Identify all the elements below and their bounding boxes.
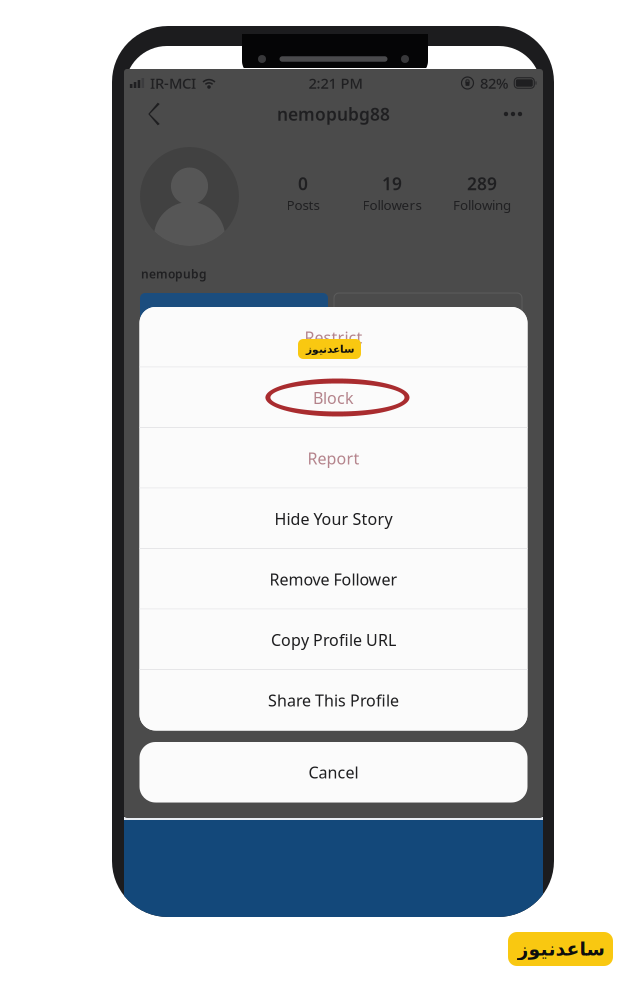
button[interactable]: Share This Profile — [139, 670, 527, 730]
button[interactable]: Block — [139, 367, 527, 428]
button[interactable]: Copy Profile URL — [139, 609, 527, 670]
staticText: 2:21 PM — [308, 73, 362, 93]
staticText: 82% — [480, 73, 508, 93]
staticText: Restrict — [304, 327, 362, 348]
button[interactable]: Back — [138, 97, 170, 131]
staticText: Followers — [362, 196, 421, 214]
staticText: Cancel — [308, 762, 358, 783]
staticText: Remove Follower — [269, 569, 397, 590]
staticText: Following — [453, 196, 511, 214]
staticText: Block — [313, 387, 354, 408]
staticText: 289 — [467, 172, 497, 195]
staticText: 0 — [298, 172, 308, 195]
button[interactable]: Hide Your Story — [139, 488, 527, 549]
staticText: 19 — [382, 172, 402, 195]
staticText: Copy Profile URL — [271, 629, 396, 650]
staticText: nemopubg88 — [277, 102, 390, 125]
staticText: Posts — [286, 196, 319, 214]
staticText: nemopubg — [141, 266, 207, 282]
staticText: ساعدنیوز — [305, 343, 353, 355]
button[interactable]: Remove Follower — [139, 549, 527, 609]
button[interactable]: Restrict — [139, 307, 527, 367]
staticText: ساعدنیوز — [517, 938, 604, 960]
staticText: IR-MCI — [150, 73, 196, 93]
staticText: Report — [307, 448, 359, 469]
button[interactable]: Cancel — [139, 742, 527, 802]
button[interactable]: Report — [139, 428, 527, 488]
staticText: Hide Your Story — [274, 508, 392, 529]
staticText: Share This Profile — [268, 690, 399, 711]
button[interactable]: More options — [497, 97, 529, 131]
